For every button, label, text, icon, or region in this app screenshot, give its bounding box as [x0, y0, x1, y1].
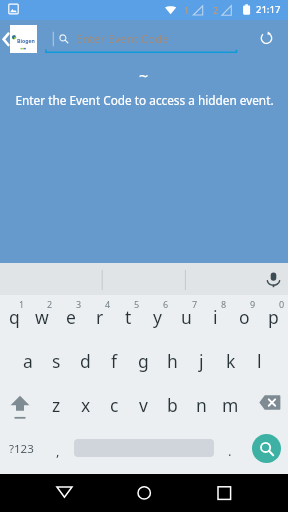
staticText: 21:17: [256, 3, 281, 16]
button[interactable]: Enter Event Code: [76, 20, 236, 58]
staticText: p: [268, 305, 279, 329]
staticText: h: [167, 349, 178, 373]
staticText: f: [111, 349, 118, 373]
button[interactable]: w: [28, 295, 56, 342]
button[interactable]: ?123: [0, 430, 43, 474]
staticText: y: [153, 305, 162, 329]
button[interactable]: b: [158, 386, 187, 430]
staticText: x: [81, 393, 91, 417]
button[interactable]: a: [13, 342, 42, 386]
button[interactable]: z: [42, 386, 71, 430]
button[interactable]: v: [129, 386, 158, 430]
button[interactable]: d: [71, 342, 100, 386]
button[interactable]: x: [71, 386, 100, 430]
button[interactable]: Back: [44, 474, 84, 512]
button[interactable]: Shift: [0, 386, 42, 430]
button[interactable]: j: [187, 342, 216, 386]
staticText: 1: [184, 4, 190, 16]
staticText: s: [52, 349, 61, 373]
button[interactable]: c: [100, 386, 129, 430]
staticText: 8: [221, 298, 227, 310]
button[interactable]: f: [100, 342, 129, 386]
button[interactable]: h: [158, 342, 187, 386]
staticText: v: [139, 393, 148, 417]
staticText: 3: [76, 298, 82, 310]
button[interactable]: n: [187, 386, 216, 430]
staticText: c: [110, 393, 119, 417]
staticText: 9: [250, 298, 256, 310]
staticText: d: [80, 349, 91, 373]
button[interactable]: Search: [252, 434, 281, 463]
staticText: n: [196, 393, 207, 417]
staticText: o: [239, 305, 250, 329]
staticText: 6: [163, 298, 169, 310]
staticText: j: [199, 349, 204, 373]
staticText: .: [228, 442, 232, 460]
button[interactable]: Voice input: [259, 265, 288, 294]
button[interactable]: Recents: [204, 474, 244, 512]
button[interactable]: q: [0, 295, 28, 342]
button[interactable]: u: [172, 295, 201, 342]
staticText: 5: [134, 298, 140, 310]
staticText: z: [52, 393, 61, 417]
button[interactable]: r: [85, 295, 114, 342]
button[interactable]: t: [114, 295, 143, 342]
button[interactable]: o: [230, 295, 259, 342]
staticText: i: [213, 305, 218, 329]
staticText: 0: [279, 298, 285, 310]
staticText: 7: [192, 298, 198, 310]
button[interactable]: k: [216, 342, 245, 386]
staticText: Enter Event Code: [76, 31, 169, 47]
button[interactable]: Biogen logo: [10, 25, 37, 53]
button[interactable]: m: [216, 386, 245, 430]
staticText: 2: [47, 298, 53, 310]
staticText: l: [257, 349, 262, 373]
staticText: ?123: [9, 441, 34, 457]
button[interactable]: p: [259, 295, 288, 342]
button[interactable]: .: [218, 430, 242, 474]
button[interactable]: s: [42, 342, 71, 386]
button[interactable]: Home: [124, 474, 164, 512]
staticText: q: [9, 305, 20, 329]
button[interactable]: i: [201, 295, 230, 342]
staticText: Enter the Event Code to access a hidden …: [15, 92, 274, 108]
staticText: g: [138, 349, 149, 373]
button[interactable]: y: [143, 295, 172, 342]
button[interactable]: e: [56, 295, 85, 342]
button[interactable]: l: [245, 342, 274, 386]
staticText: u: [181, 305, 192, 329]
button[interactable]: Backspace: [245, 386, 288, 430]
staticText: m: [222, 393, 239, 417]
button[interactable]: ,: [45, 430, 70, 474]
staticText: w: [35, 305, 49, 329]
staticText: b: [167, 393, 178, 417]
staticText: k: [226, 349, 236, 373]
staticText: r: [96, 305, 104, 329]
button[interactable]: g: [129, 342, 158, 386]
staticText: 4: [105, 298, 111, 310]
staticText: e: [66, 305, 76, 329]
staticText: 2: [213, 4, 219, 16]
button[interactable]: Back: [0, 20, 12, 58]
staticText: t: [125, 305, 132, 329]
staticText: ,: [56, 442, 60, 460]
staticText: a: [23, 349, 33, 373]
staticText: ~: [139, 65, 149, 87]
staticText: 1: [19, 298, 25, 310]
staticText: Biogen: [17, 37, 35, 44]
button[interactable]: Refresh: [252, 24, 281, 53]
